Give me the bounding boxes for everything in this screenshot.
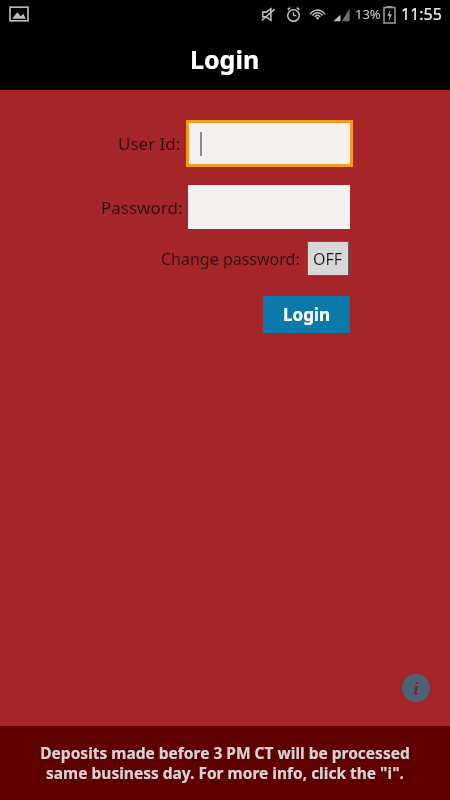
staticText: OFF: [313, 248, 343, 270]
staticText: 11:55: [401, 3, 442, 25]
staticText: Login: [190, 42, 260, 76]
staticText: Change password:: [161, 248, 300, 270]
button[interactable]: OFF: [308, 242, 348, 275]
staticText: 13%: [355, 5, 381, 23]
button[interactable]: Deposits made before 3 PM CT will be pro…: [0, 726, 450, 800]
staticText: User Id:: [118, 132, 181, 155]
button[interactable]: [189, 123, 350, 164]
staticText: Password:: [101, 196, 183, 219]
staticText: Deposits made before 3 PM CT will be pro…: [24, 742, 426, 784]
staticText: Login: [283, 303, 331, 326]
staticText: i: [413, 677, 420, 700]
button[interactable]: More information: [402, 674, 430, 702]
button[interactable]: Login: [263, 296, 350, 333]
